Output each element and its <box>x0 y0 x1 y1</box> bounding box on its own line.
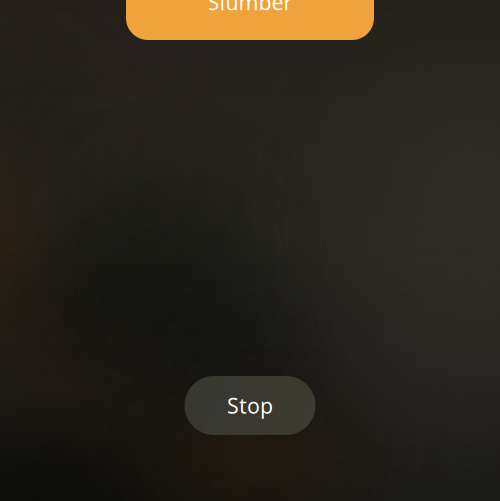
button[interactable]: Slumber <box>126 0 374 40</box>
staticText: Slumber <box>207 0 292 16</box>
staticText: Stop <box>227 391 273 420</box>
button[interactable]: Stop <box>184 376 315 435</box>
